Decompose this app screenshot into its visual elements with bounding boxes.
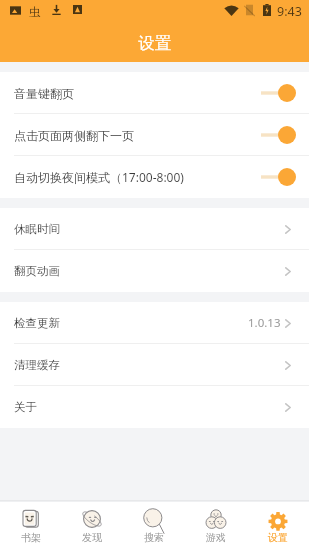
button[interactable]: 休眠时间 bbox=[0, 208, 309, 250]
staticText: 虫 bbox=[29, 4, 41, 17]
staticText: 翻页动画 bbox=[14, 264, 60, 278]
button[interactable]: Toggle bbox=[261, 167, 296, 187]
button[interactable]: 书架 bbox=[0, 502, 61, 550]
button[interactable]: 设置 bbox=[247, 502, 309, 550]
staticText: 设置 bbox=[138, 33, 171, 54]
staticText: 书架 bbox=[21, 531, 41, 544]
button[interactable]: 关于 bbox=[0, 386, 309, 428]
staticText: 自动切换夜间模式（17:00-8:00) bbox=[14, 169, 184, 185]
staticText: 关于 bbox=[14, 400, 37, 414]
staticText: 休眠时间 bbox=[14, 222, 60, 236]
button[interactable]: 清理缓存 bbox=[0, 344, 309, 386]
staticText: 9:43 bbox=[277, 3, 302, 20]
button[interactable]: 发现 bbox=[61, 502, 123, 550]
staticText: 1.0.13 bbox=[248, 315, 281, 331]
button[interactable]: Toggle bbox=[261, 125, 296, 145]
button[interactable]: 检查更新 bbox=[0, 302, 309, 344]
button[interactable]: 点击页面两侧翻下一页 bbox=[0, 114, 309, 156]
staticText: 游戏 bbox=[206, 531, 226, 544]
staticText: 设置 bbox=[268, 531, 288, 544]
button[interactable]: 游戏 bbox=[185, 502, 247, 550]
button[interactable]: 音量键翻页 bbox=[0, 72, 309, 114]
button[interactable]: 翻页动画 bbox=[0, 250, 309, 292]
staticText: 清理缓存 bbox=[14, 358, 60, 372]
staticText: 音量键翻页 bbox=[14, 86, 74, 101]
staticText: 搜索 bbox=[144, 531, 164, 544]
staticText: 点击页面两侧翻下一页 bbox=[14, 128, 134, 143]
button[interactable]: 搜索 bbox=[123, 502, 185, 550]
staticText: 发现 bbox=[82, 531, 102, 544]
button[interactable]: Toggle bbox=[261, 83, 296, 103]
button[interactable]: 自动切换夜间模式（17:00-8:00) bbox=[0, 156, 309, 198]
staticText: 检查更新 bbox=[14, 316, 60, 330]
